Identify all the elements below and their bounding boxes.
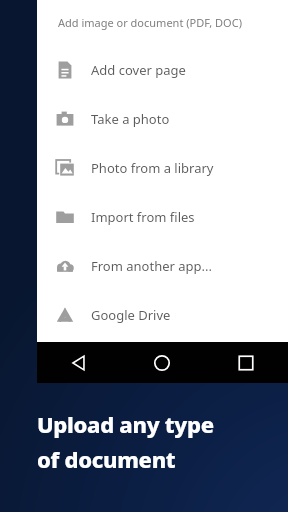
staticText: From another app... bbox=[91, 257, 212, 275]
staticText: Add cover page bbox=[91, 61, 186, 79]
staticText: Upload any type bbox=[37, 409, 214, 439]
button[interactable]: Import from files bbox=[37, 192, 288, 241]
button[interactable]: Home bbox=[120, 342, 204, 383]
staticText: Photo from a library bbox=[91, 159, 214, 177]
button[interactable]: From another app... bbox=[37, 241, 288, 290]
button[interactable]: Recent apps bbox=[204, 342, 288, 383]
button[interactable]: Take a photo bbox=[37, 94, 288, 143]
button[interactable]: Add cover page bbox=[37, 45, 288, 94]
button[interactable]: Back bbox=[37, 342, 120, 383]
staticText: of document bbox=[37, 444, 176, 474]
button[interactable]: Photo from a library bbox=[37, 143, 288, 192]
staticText: Import from files bbox=[91, 208, 195, 226]
button[interactable]: Google Drive bbox=[37, 290, 288, 339]
staticText: Add image or document (PDF, DOC) bbox=[58, 15, 242, 30]
staticText: Take a photo bbox=[91, 110, 170, 128]
staticText: Google Drive bbox=[91, 306, 171, 324]
